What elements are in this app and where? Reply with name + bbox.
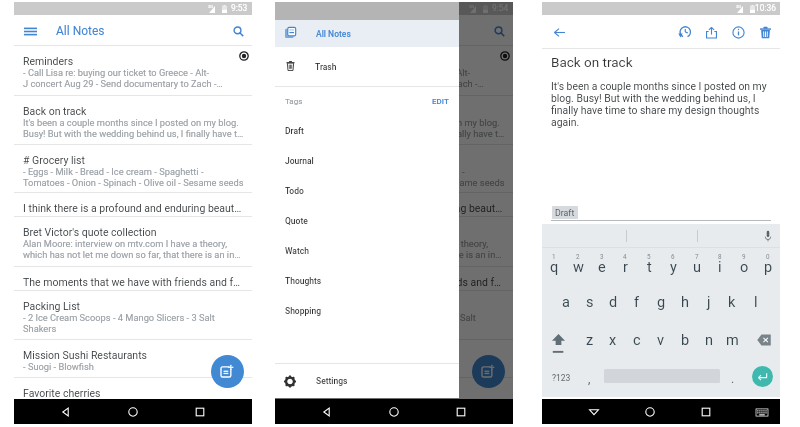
button[interactable]: r [614,256,636,278]
button[interactable]: j [698,291,720,313]
button[interactable]: 1 [543,245,565,267]
button[interactable]: z [579,329,601,351]
button[interactable]: n [698,329,720,351]
button[interactable]: Recents [192,404,208,420]
button[interactable]: Draft [285,116,459,146]
button[interactable]: Home [125,404,141,420]
button[interactable]: 9 [733,245,755,267]
button[interactable]: d [602,291,624,313]
button[interactable]: Favorite cherries [275,378,513,402]
button[interactable]: Back [319,404,335,420]
button[interactable]: Menu [21,22,39,40]
button[interactable]: All Notes [275,20,459,47]
button[interactable]: Reminders [275,46,513,96]
button[interactable]: x [602,329,624,351]
button[interactable]: Todo [285,176,459,206]
button[interactable]: Back [319,404,335,420]
button[interactable]: 5 [638,245,660,267]
button[interactable]: New note [211,355,244,388]
button[interactable]: I think there is a profound and enduring… [275,193,513,217]
button[interactable]: c [626,329,648,351]
button[interactable]: Recents [698,404,714,420]
button[interactable]: Back [550,23,568,41]
button[interactable]: s [579,291,601,313]
button[interactable]: # Grocery list [275,145,513,193]
button[interactable]: Packing List [275,291,513,340]
button[interactable]: 4 [614,245,636,267]
button[interactable]: Draft [552,206,578,219]
button[interactable]: Watch [285,236,459,266]
button[interactable]: . [722,368,744,390]
button[interactable]: u [686,256,708,278]
button[interactable]: w [567,256,589,278]
button[interactable]: b [674,329,696,351]
button[interactable]: Home [386,404,402,420]
button[interactable]: Bret Victor's quote collection [275,217,513,267]
button[interactable]: Back on track [275,96,513,145]
button[interactable]: Quote [285,206,459,236]
button[interactable]: Back [586,404,602,420]
button[interactable]: h [674,291,696,313]
button[interactable]: History [675,23,693,41]
button[interactable]: Shopping [285,296,459,326]
button[interactable]: Hide keyboard [754,404,770,420]
button[interactable]: m [721,329,743,351]
button[interactable]: Home [642,404,658,420]
button[interactable]: Mission Sushi Restaurants [14,340,252,378]
button[interactable]: a [555,291,577,313]
button[interactable]: Journal [285,146,459,176]
button[interactable]: Enter [752,366,773,387]
button[interactable]: 6 [662,245,684,267]
button[interactable]: Search [229,22,247,40]
button[interactable]: y [662,256,684,278]
button[interactable]: 2 [567,245,589,267]
button[interactable]: Bret Victor's quote collection [14,217,252,267]
button[interactable]: Favorite cherries [14,378,252,402]
button[interactable]: q [543,256,565,278]
button[interactable]: Home [386,404,402,420]
button[interactable]: v [650,329,672,351]
button[interactable]: k [721,291,743,313]
button[interactable]: , [578,368,600,390]
button[interactable]: Backspace [747,328,775,352]
button[interactable]: Menu [282,22,300,40]
button[interactable]: Trash [275,47,459,86]
button[interactable]: Packing List [14,291,252,340]
button[interactable]: I think there is a profound and enduring… [14,193,252,217]
button[interactable]: l [745,291,767,313]
button[interactable]: Back on track [14,96,252,145]
button[interactable]: Reminders [14,46,252,96]
button[interactable]: New note [472,355,505,388]
staticText: Favorite cherries [23,387,101,399]
button[interactable]: Share [702,23,720,41]
button[interactable]: 8 [709,245,731,267]
button[interactable]: g [650,291,672,313]
button[interactable]: Back [58,404,74,420]
button[interactable]: 3 [591,245,613,267]
button[interactable]: 0 [757,245,779,267]
button[interactable]: 7 [686,245,708,267]
button[interactable]: p [757,256,779,278]
button[interactable]: Mission Sushi Restaurants [275,340,513,378]
button[interactable]: Info [729,23,747,41]
button[interactable]: t [638,256,660,278]
button[interactable]: Thoughts [285,266,459,296]
button[interactable]: Shift [546,329,572,359]
button[interactable]: The moments that we have with friends an… [275,267,513,291]
button[interactable]: Recents [453,404,469,420]
button[interactable]: Voice input [761,229,775,243]
button[interactable]: i [709,256,731,278]
button[interactable]: The moments that we have with friends an… [14,267,252,291]
button[interactable]: Settings [275,364,459,398]
staticText: - Call Lisa re: buying our ticket to Gre… [284,67,471,78]
button[interactable]: Delete [756,23,774,41]
button[interactable]: Recents [453,404,469,420]
button[interactable]: e [591,256,613,278]
button[interactable]: EDIT [432,97,449,106]
button[interactable]: o [733,256,755,278]
button[interactable]: ?123 [548,368,574,388]
button[interactable]: Search [490,22,508,40]
button[interactable]: f [626,291,648,313]
button[interactable]: # Grocery list [14,145,252,193]
